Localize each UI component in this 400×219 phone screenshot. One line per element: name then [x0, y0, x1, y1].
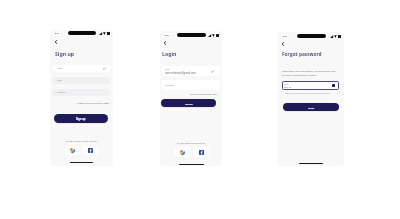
staticText: LOGIN: [185, 102, 193, 105]
button[interactable]: Back: [280, 41, 286, 47]
staticText: Name: [57, 67, 63, 70]
staticText: Please enter your email address. You wil…: [282, 70, 337, 76]
button[interactable]: Clear: [332, 84, 335, 87]
staticText: SEND: [308, 106, 315, 109]
staticText: tom.rb: [284, 86, 291, 89]
staticText: Or login with social account: [177, 142, 206, 145]
button[interactable]: Continue with Google: [65, 146, 80, 155]
button[interactable]: SEND: [283, 103, 339, 111]
staticText: Password: [165, 84, 175, 87]
staticText: 9:41: [165, 34, 170, 37]
staticText: Already have an account?: [77, 102, 102, 105]
staticText: Forgot password: [282, 51, 322, 57]
button[interactable]: Continue with Facebook: [83, 146, 98, 155]
button[interactable]: Back: [162, 40, 168, 46]
button[interactable]: Sign up: [54, 114, 108, 123]
button[interactable]: Back: [53, 39, 59, 45]
staticText: Forgot your password?: [190, 93, 212, 96]
button[interactable]: Email: [282, 81, 339, 90]
button[interactable]: Continue with Facebook: [193, 147, 209, 157]
button[interactable]: Password: [52, 89, 110, 96]
button[interactable]: Continue with Google: [174, 147, 190, 157]
staticText: Email: [57, 79, 63, 82]
button[interactable]: Yes: [213, 93, 217, 96]
staticText: tom.robinson@gmail.com: [165, 71, 197, 74]
staticText: 9:41: [55, 32, 60, 35]
button[interactable]: Password: [162, 80, 220, 90]
staticText: Password: [57, 91, 67, 94]
staticText: Email: [284, 83, 289, 85]
button[interactable]: Email: [52, 77, 110, 84]
staticText: 9:41: [283, 35, 288, 38]
staticText: Email: [165, 68, 170, 70]
staticText: Sign up: [76, 117, 86, 121]
button[interactable]: Login: [103, 102, 109, 105]
button[interactable]: Email: [162, 66, 220, 76]
staticText: Login: [162, 50, 177, 57]
staticText: Sign up: [55, 50, 75, 57]
staticText: Or sign up with social account: [66, 140, 97, 143]
staticText: This is not a valid email address. We wi…: [285, 92, 330, 94]
button[interactable]: Name: [52, 65, 110, 72]
button[interactable]: LOGIN: [161, 99, 216, 107]
